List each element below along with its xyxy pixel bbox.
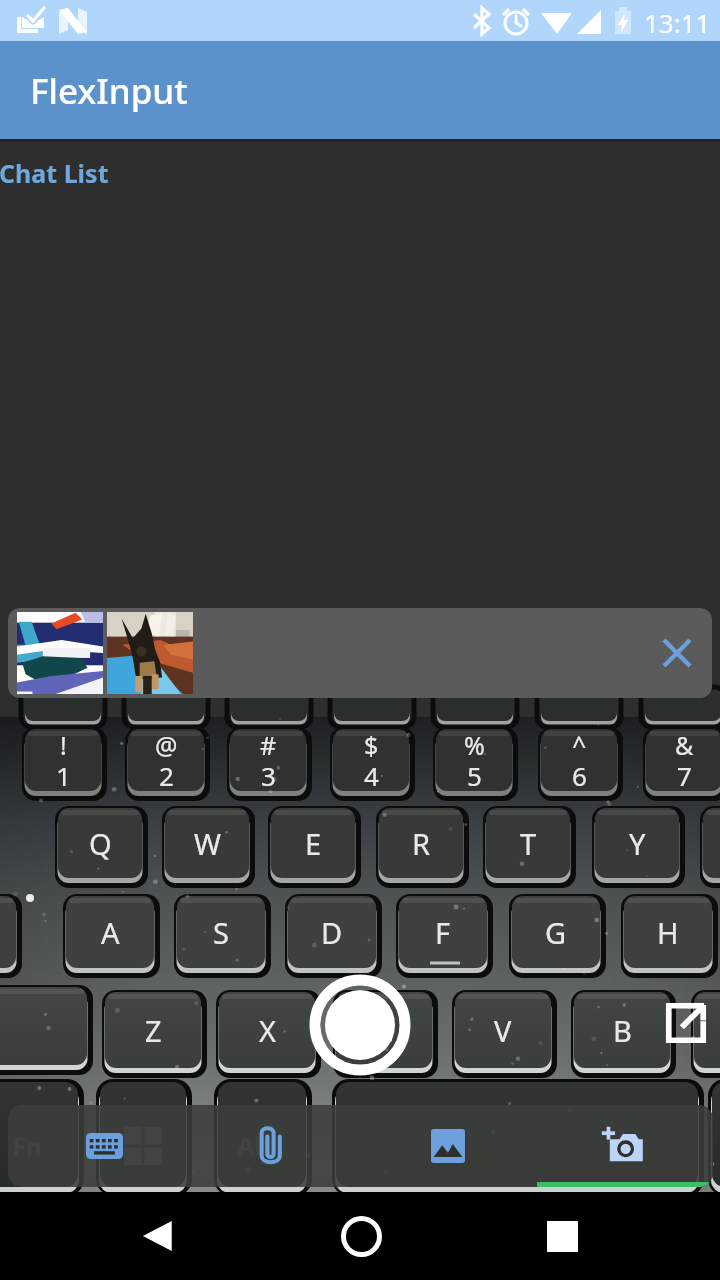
button[interactable]: Attached photo 1 xyxy=(17,612,103,694)
staticText: % xyxy=(464,728,485,762)
staticText: Y xyxy=(629,824,646,863)
button[interactable]: Camera xyxy=(575,1105,671,1187)
staticText: A xyxy=(101,913,120,952)
staticText: ! xyxy=(60,728,67,762)
button[interactable]: Back xyxy=(112,1192,202,1280)
staticText: ^ xyxy=(572,728,587,762)
staticText: Fn xyxy=(12,1129,42,1163)
staticText: & xyxy=(675,728,694,762)
button[interactable]: Attach file xyxy=(223,1105,319,1187)
button[interactable]: Open in new window xyxy=(665,1002,707,1044)
button[interactable]: Attached photo 2 xyxy=(107,612,193,694)
staticText: 1 xyxy=(56,758,71,793)
staticText: B xyxy=(613,1011,632,1050)
button[interactable]: Clear attachments xyxy=(653,629,701,677)
button[interactable]: Keyboard xyxy=(56,1105,152,1187)
button[interactable]: Gallery xyxy=(400,1105,496,1187)
staticText: G xyxy=(545,913,567,952)
staticText: E xyxy=(305,824,322,863)
staticText: X xyxy=(259,1011,276,1050)
staticText: 5 xyxy=(467,758,482,793)
staticText: F xyxy=(435,913,451,952)
staticText: # xyxy=(260,728,277,762)
staticText: @ xyxy=(155,728,178,762)
staticText: 3 xyxy=(261,758,276,793)
staticText: 4 xyxy=(364,758,379,793)
staticText: 2 xyxy=(159,758,174,793)
staticText: S xyxy=(213,913,229,952)
staticText: 7 xyxy=(677,758,692,793)
staticText: H xyxy=(657,913,679,952)
staticText: V xyxy=(494,1011,512,1050)
staticText: R xyxy=(412,824,431,863)
button[interactable]: Home xyxy=(316,1192,406,1280)
staticText: D xyxy=(321,913,343,952)
staticText: W xyxy=(194,824,221,863)
staticText: 13:11 xyxy=(644,5,711,40)
staticText: C xyxy=(375,1011,394,1050)
staticText: Q xyxy=(89,824,112,863)
button[interactable]: Take photo xyxy=(309,974,411,1076)
staticText: 6 xyxy=(572,758,587,793)
staticText: Chat List xyxy=(0,156,109,190)
staticText: FlexInput xyxy=(30,67,188,115)
staticText: T xyxy=(520,824,537,863)
button[interactable]: Recent apps xyxy=(517,1192,607,1280)
staticText: Z xyxy=(145,1011,162,1050)
staticText: $ xyxy=(364,728,379,762)
staticText: Alt xyxy=(237,1128,273,1162)
